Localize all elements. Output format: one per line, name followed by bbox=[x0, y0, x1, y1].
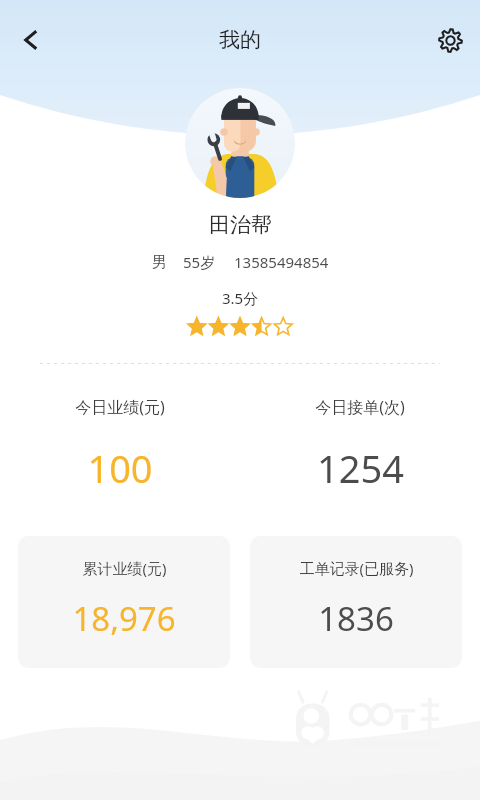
staticText: 3.5分 bbox=[222, 288, 259, 308]
staticText: 男 bbox=[152, 253, 167, 272]
button[interactable]: 累计业绩(元) bbox=[18, 536, 230, 668]
staticText: 100 bbox=[87, 442, 153, 494]
button[interactable]: Settings bbox=[426, 16, 474, 64]
button[interactable]: 今日接单(次) bbox=[240, 396, 480, 494]
button[interactable]: 工单记录(已服务) bbox=[250, 536, 462, 668]
staticText: 田治帮 bbox=[209, 212, 272, 238]
button[interactable]: Avatar bbox=[185, 88, 295, 198]
staticText: 工单记录(已服务) bbox=[299, 558, 414, 578]
staticText: 我的 bbox=[219, 27, 261, 53]
staticText: 1254 bbox=[317, 442, 404, 494]
staticText: 今日接单(次) bbox=[315, 396, 405, 418]
button[interactable]: 今日业绩(元) bbox=[0, 396, 240, 494]
staticText: 18,976 bbox=[72, 596, 176, 641]
staticText: 1836 bbox=[318, 596, 394, 641]
button[interactable]: Back bbox=[6, 16, 54, 64]
staticText: 今日业绩(元) bbox=[75, 396, 165, 418]
staticText: 累计业绩(元) bbox=[82, 558, 167, 578]
staticText: 13585494854 bbox=[234, 252, 329, 272]
staticText: 55岁 bbox=[183, 252, 216, 272]
